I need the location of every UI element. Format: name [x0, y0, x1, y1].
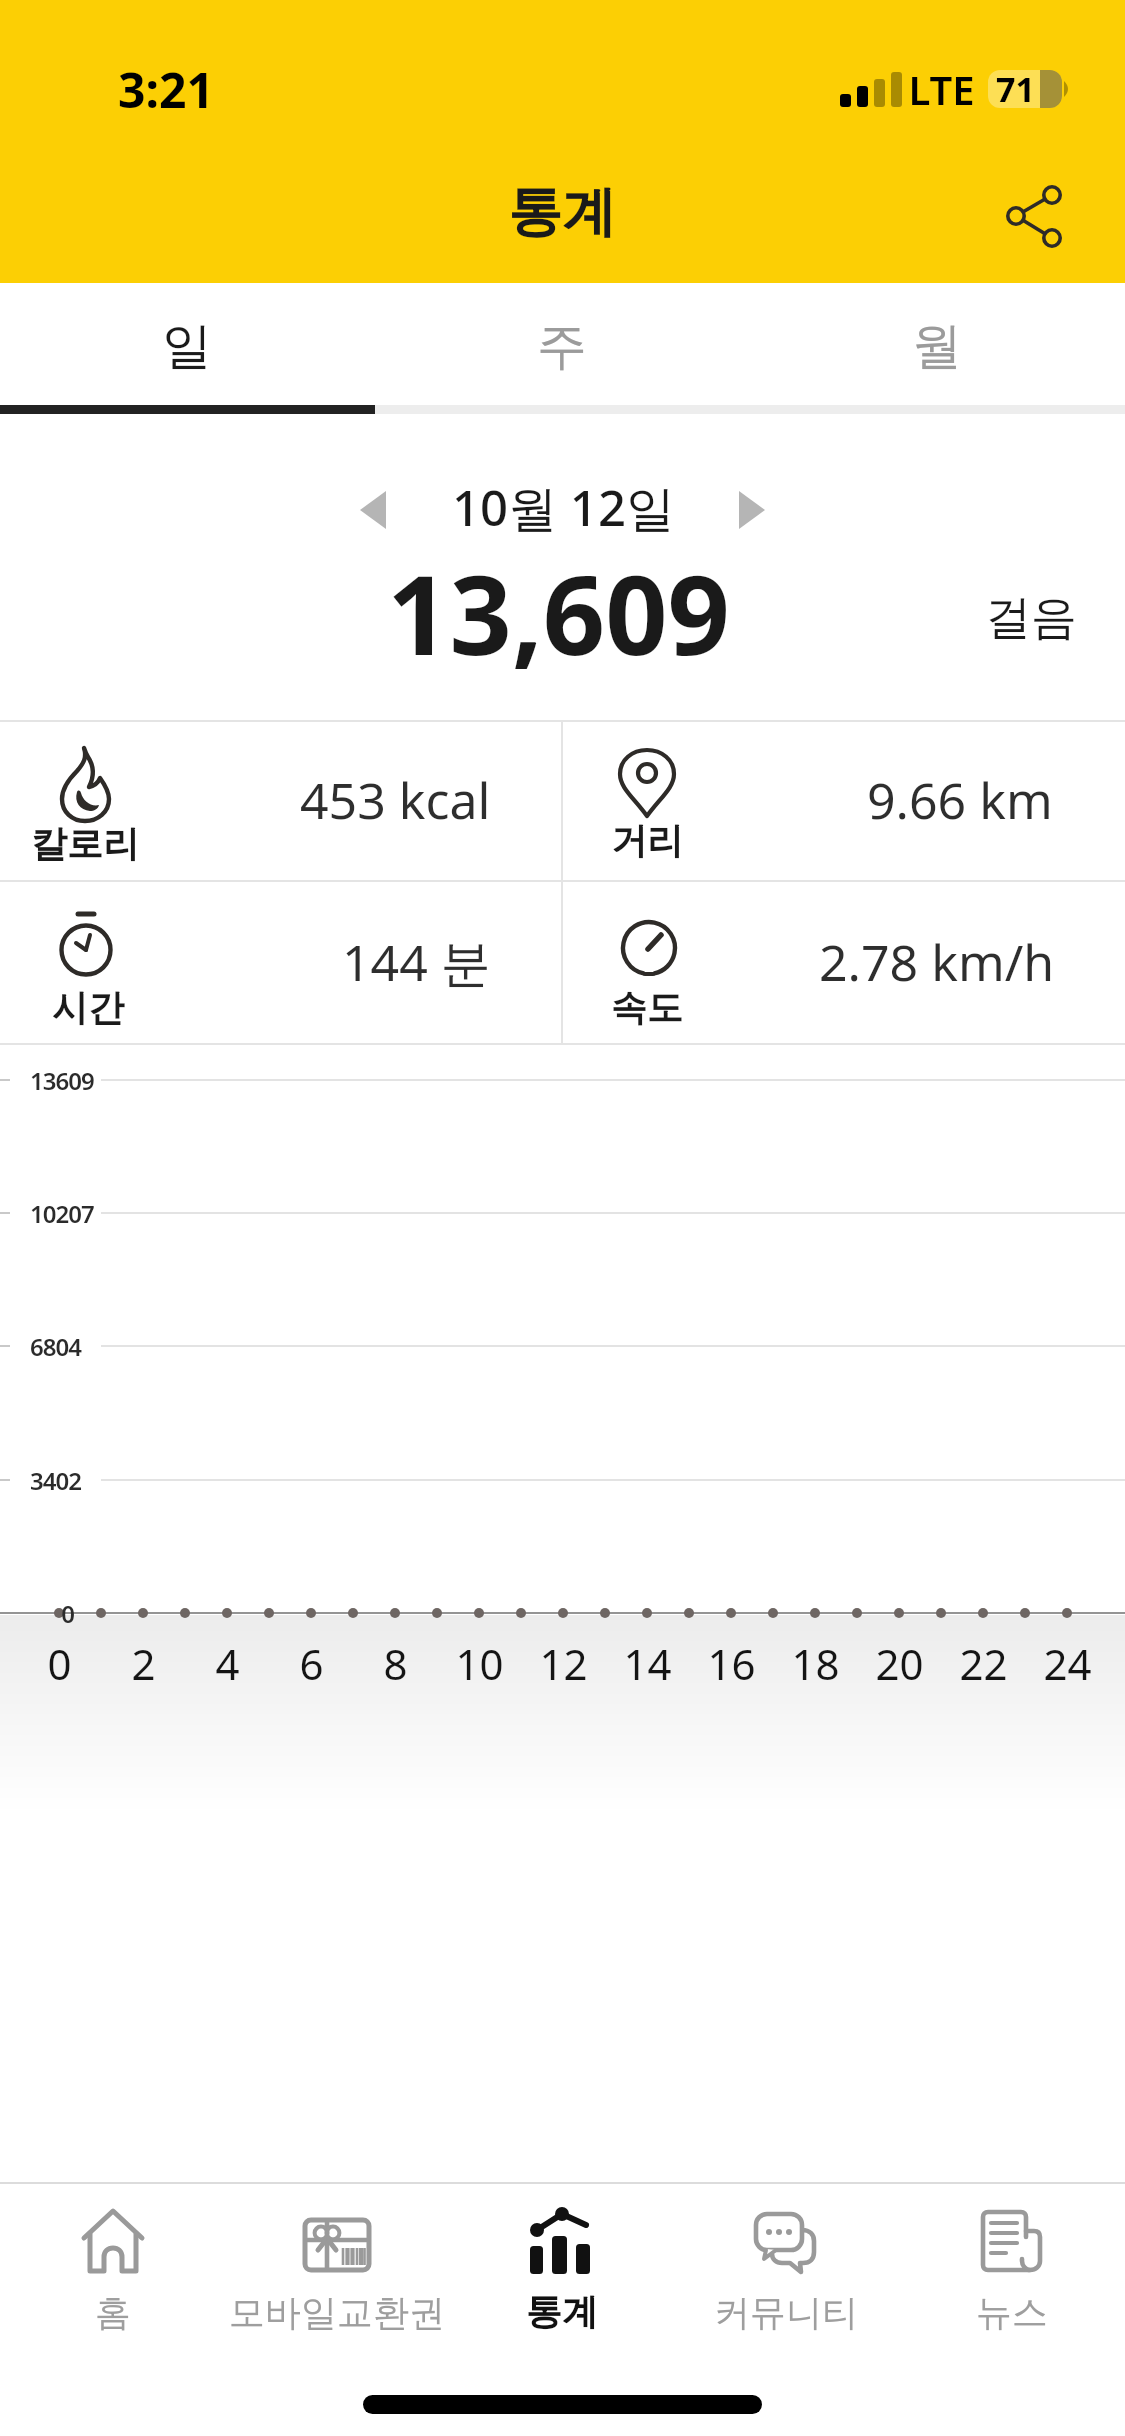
button[interactable]	[705, 470, 795, 550]
button[interactable]	[8, 2184, 218, 2344]
staticText: LTE	[908, 62, 975, 116]
staticText: 칼로리	[31, 821, 139, 866]
button[interactable]	[457, 2184, 667, 2344]
staticText: 22	[959, 1635, 1008, 1692]
staticText: 일	[162, 315, 212, 378]
button[interactable]	[975, 175, 1085, 265]
staticText: 주	[537, 315, 587, 378]
staticText: 12	[539, 1635, 588, 1692]
staticText: 2	[131, 1635, 156, 1692]
staticText: 커뮤니티	[714, 2290, 858, 2335]
staticText: 10207	[30, 1197, 94, 1230]
staticText: 뉴스	[976, 2290, 1048, 2335]
staticText: 월	[912, 315, 962, 378]
button[interactable]	[375, 283, 750, 414]
staticText: 3:21	[118, 57, 214, 122]
staticText: 거리	[611, 818, 683, 863]
staticText: 0	[47, 1635, 72, 1692]
staticText: 18	[791, 1635, 840, 1692]
staticText: 9.66 km	[867, 766, 1053, 834]
staticText: 걸음	[985, 589, 1077, 647]
staticText: 시간	[52, 985, 124, 1030]
staticText: 16	[707, 1635, 756, 1692]
staticText: 10월 12일	[452, 474, 675, 541]
staticText: 144 분	[342, 928, 491, 996]
staticText: 6804	[30, 1330, 81, 1363]
staticText: 8	[383, 1635, 408, 1692]
staticText: 2.78 km/h	[819, 928, 1055, 996]
staticText: 13609	[30, 1064, 94, 1097]
button[interactable]	[750, 283, 1125, 414]
button[interactable]	[0, 283, 375, 414]
button[interactable]	[681, 2184, 891, 2344]
staticText: 4	[215, 1635, 240, 1692]
staticText: 14	[623, 1635, 672, 1692]
staticText: 3402	[30, 1464, 81, 1497]
staticText: 통계	[526, 2289, 598, 2334]
button[interactable]	[907, 2184, 1117, 2344]
button[interactable]	[330, 470, 420, 550]
staticText: 10	[455, 1635, 504, 1692]
staticText: 71	[996, 66, 1035, 112]
staticText: 통계	[508, 178, 616, 246]
staticText: 0	[61, 1597, 75, 1630]
staticText: 모바일교환권	[229, 2290, 445, 2335]
staticText: 20	[875, 1635, 924, 1692]
staticText: 속도	[611, 985, 683, 1030]
staticText: 13,609	[387, 538, 730, 686]
staticText: 453 kcal	[300, 766, 491, 834]
staticText: 6	[299, 1635, 324, 1692]
staticText: 24	[1043, 1635, 1092, 1692]
staticText: 홈	[95, 2290, 131, 2335]
button[interactable]	[232, 2184, 442, 2344]
